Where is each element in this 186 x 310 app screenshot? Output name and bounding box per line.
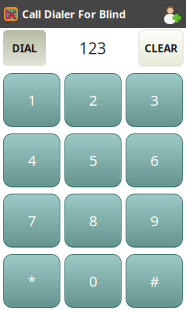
staticText: * <box>28 271 36 291</box>
button[interactable]: # <box>126 254 183 308</box>
staticText: # <box>150 271 159 291</box>
staticText: 9 <box>150 211 158 230</box>
button[interactable]: 9 <box>126 194 183 248</box>
staticText: 4 <box>28 151 36 170</box>
button[interactable]: 0 <box>64 254 122 308</box>
staticText: 7 <box>28 211 36 230</box>
staticText: CLEAR <box>144 41 177 55</box>
button[interactable]: 8 <box>64 194 122 248</box>
staticText: 5 <box>89 151 97 170</box>
staticText: DIAL <box>12 41 37 55</box>
staticText: 0 <box>89 271 97 291</box>
staticText: 2 <box>89 90 97 110</box>
button[interactable]: 6 <box>126 133 183 187</box>
button[interactable]: * <box>3 254 60 308</box>
staticText: 3 <box>150 90 158 110</box>
staticText: Call Dialer For Blind <box>22 7 126 21</box>
button[interactable]: CLEAR <box>139 30 183 66</box>
button[interactable]: 3 <box>126 73 183 127</box>
button[interactable]: DIAL <box>3 30 46 66</box>
button[interactable]: 1 <box>3 73 60 127</box>
staticText: 8 <box>89 211 97 230</box>
staticText: 6 <box>150 151 158 170</box>
button[interactable]: 4 <box>3 133 60 187</box>
button[interactable]: 7 <box>3 194 60 248</box>
staticText: 123 <box>79 37 106 59</box>
button[interactable]: 2 <box>64 73 122 127</box>
button[interactable]: Add contact <box>164 4 182 23</box>
button[interactable]: 5 <box>64 133 122 187</box>
staticText: 1 <box>28 90 36 110</box>
